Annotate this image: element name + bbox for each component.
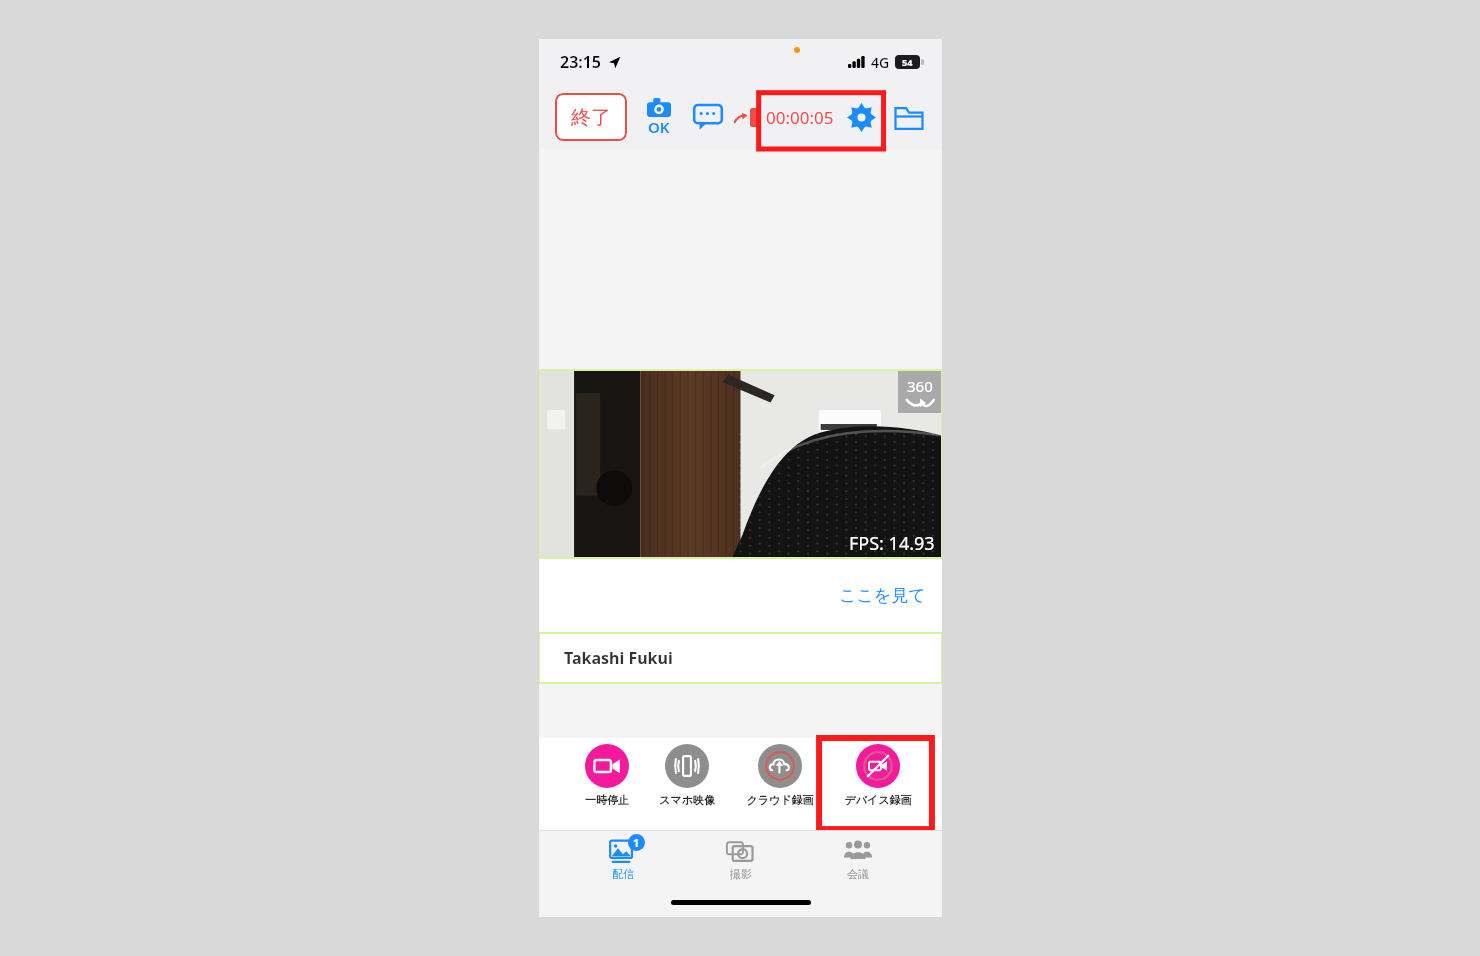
button[interactable]: Folder (892, 100, 926, 134)
button[interactable]: ここを見て (839, 585, 926, 606)
button[interactable]: 360 view (540, 371, 941, 557)
staticText: 00:00:05 (766, 106, 834, 129)
staticText: 終了 (571, 105, 611, 130)
staticText: OK (648, 117, 670, 137)
staticText: 1 (633, 835, 640, 850)
staticText: 4G (871, 53, 890, 72)
staticText: FPS: 14.93 (849, 531, 935, 556)
staticText: 配信 (612, 867, 634, 881)
staticText: 360 (907, 376, 933, 396)
button[interactable]: 終了 (555, 93, 627, 141)
button[interactable]: 会議 (824, 836, 892, 883)
button[interactable]: 一時停止 (583, 744, 631, 807)
staticText: クラウド録画 (746, 793, 814, 807)
button[interactable]: Settings (844, 100, 878, 134)
button[interactable]: デバイス録画 (842, 744, 914, 807)
staticText: 54 (902, 56, 913, 68)
staticText: 23:15 (560, 51, 602, 73)
staticText: 会議 (847, 867, 869, 881)
staticText: 撮影 (730, 867, 752, 881)
staticText: Takashi Fukui (564, 647, 673, 669)
button[interactable]: 360 view (898, 371, 941, 413)
button[interactable]: Takashi Fukui (540, 634, 941, 682)
button[interactable]: スマホ映像 (657, 744, 717, 807)
staticText: 一時停止 (585, 793, 629, 807)
button[interactable]: 00:00:05 (734, 106, 834, 129)
staticText: デバイス録画 (844, 793, 912, 807)
button[interactable]: Chat (691, 100, 725, 134)
button[interactable]: クラウド録画 (744, 744, 816, 807)
staticText: スマホ映像 (659, 793, 715, 807)
button[interactable]: 撮影 (707, 836, 775, 883)
button[interactable]: 1 (589, 836, 657, 883)
button[interactable]: OK (645, 96, 673, 139)
